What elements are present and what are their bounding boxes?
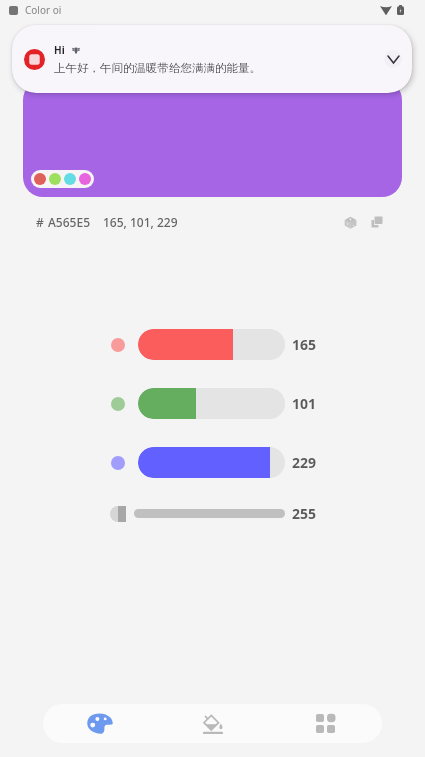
staticText: 165, 101, 229 (103, 214, 178, 230)
button[interactable] (138, 447, 285, 478)
button[interactable]: Expand notification (384, 50, 402, 68)
staticText: 上午好，午间的温暖带给您满满的能量。 (54, 61, 261, 75)
button[interactable] (134, 509, 285, 518)
staticText: A565E5 (48, 214, 91, 230)
staticText: 165 (292, 335, 317, 354)
button[interactable] (138, 388, 285, 419)
staticText: Color oi (25, 3, 62, 17)
button[interactable]: Palette (43, 704, 156, 743)
button[interactable]: Random color (339, 211, 361, 233)
button[interactable]: Copy color (366, 211, 388, 233)
button[interactable]: Fill color (156, 704, 269, 743)
button[interactable]: Palettes grid (269, 704, 382, 743)
button[interactable]: Hi (12, 25, 412, 93)
staticText: 101 (292, 394, 317, 413)
staticText: 229 (292, 453, 317, 472)
staticText: # (36, 214, 44, 230)
staticText: Hi (54, 43, 65, 57)
button[interactable] (138, 329, 285, 360)
button[interactable] (23, 80, 402, 197)
staticText: 255 (292, 504, 317, 523)
